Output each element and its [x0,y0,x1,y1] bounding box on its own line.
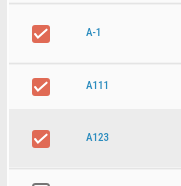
button[interactable]: Checked [32,25,50,43]
button[interactable]: Checked [32,78,50,96]
button[interactable]: Unchecked [0,169,181,186]
button[interactable]: Checked [32,130,50,148]
button[interactable]: Unchecked [32,183,50,186]
staticText: A123 [86,131,109,144]
staticText: A-1 [86,26,102,39]
staticText: A111 [86,79,109,92]
button[interactable]: Checked [0,109,181,168]
button[interactable]: Checked [0,4,181,63]
button[interactable]: Checked [0,64,181,109]
